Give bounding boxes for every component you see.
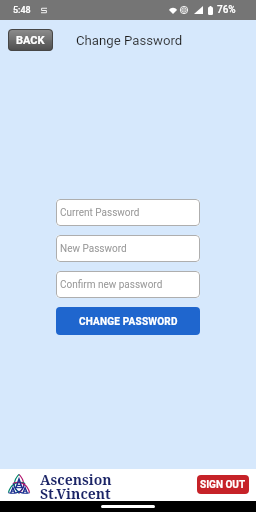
staticText: SIGN OUT: [200, 479, 246, 491]
staticText: 76%: [217, 4, 236, 16]
staticText: Current Password: [60, 207, 140, 219]
button[interactable]: New Password: [56, 235, 200, 262]
button[interactable]: CHANGE PASSWORD: [56, 307, 200, 335]
staticText: 5:48: [13, 5, 31, 16]
staticText: Change Password: [76, 33, 183, 48]
button[interactable]: Current Password: [56, 199, 200, 226]
button[interactable]: Confirm new password: [56, 271, 200, 298]
button[interactable]: BACK: [8, 29, 53, 51]
button[interactable]: SIGN OUT: [197, 475, 249, 494]
staticText: CHANGE PASSWORD: [79, 316, 178, 328]
staticText: Confirm new password: [60, 279, 163, 291]
staticText: BACK: [16, 34, 45, 47]
staticText: Ascension St.Vincent: [40, 470, 112, 502]
staticText: New Password: [60, 243, 127, 255]
